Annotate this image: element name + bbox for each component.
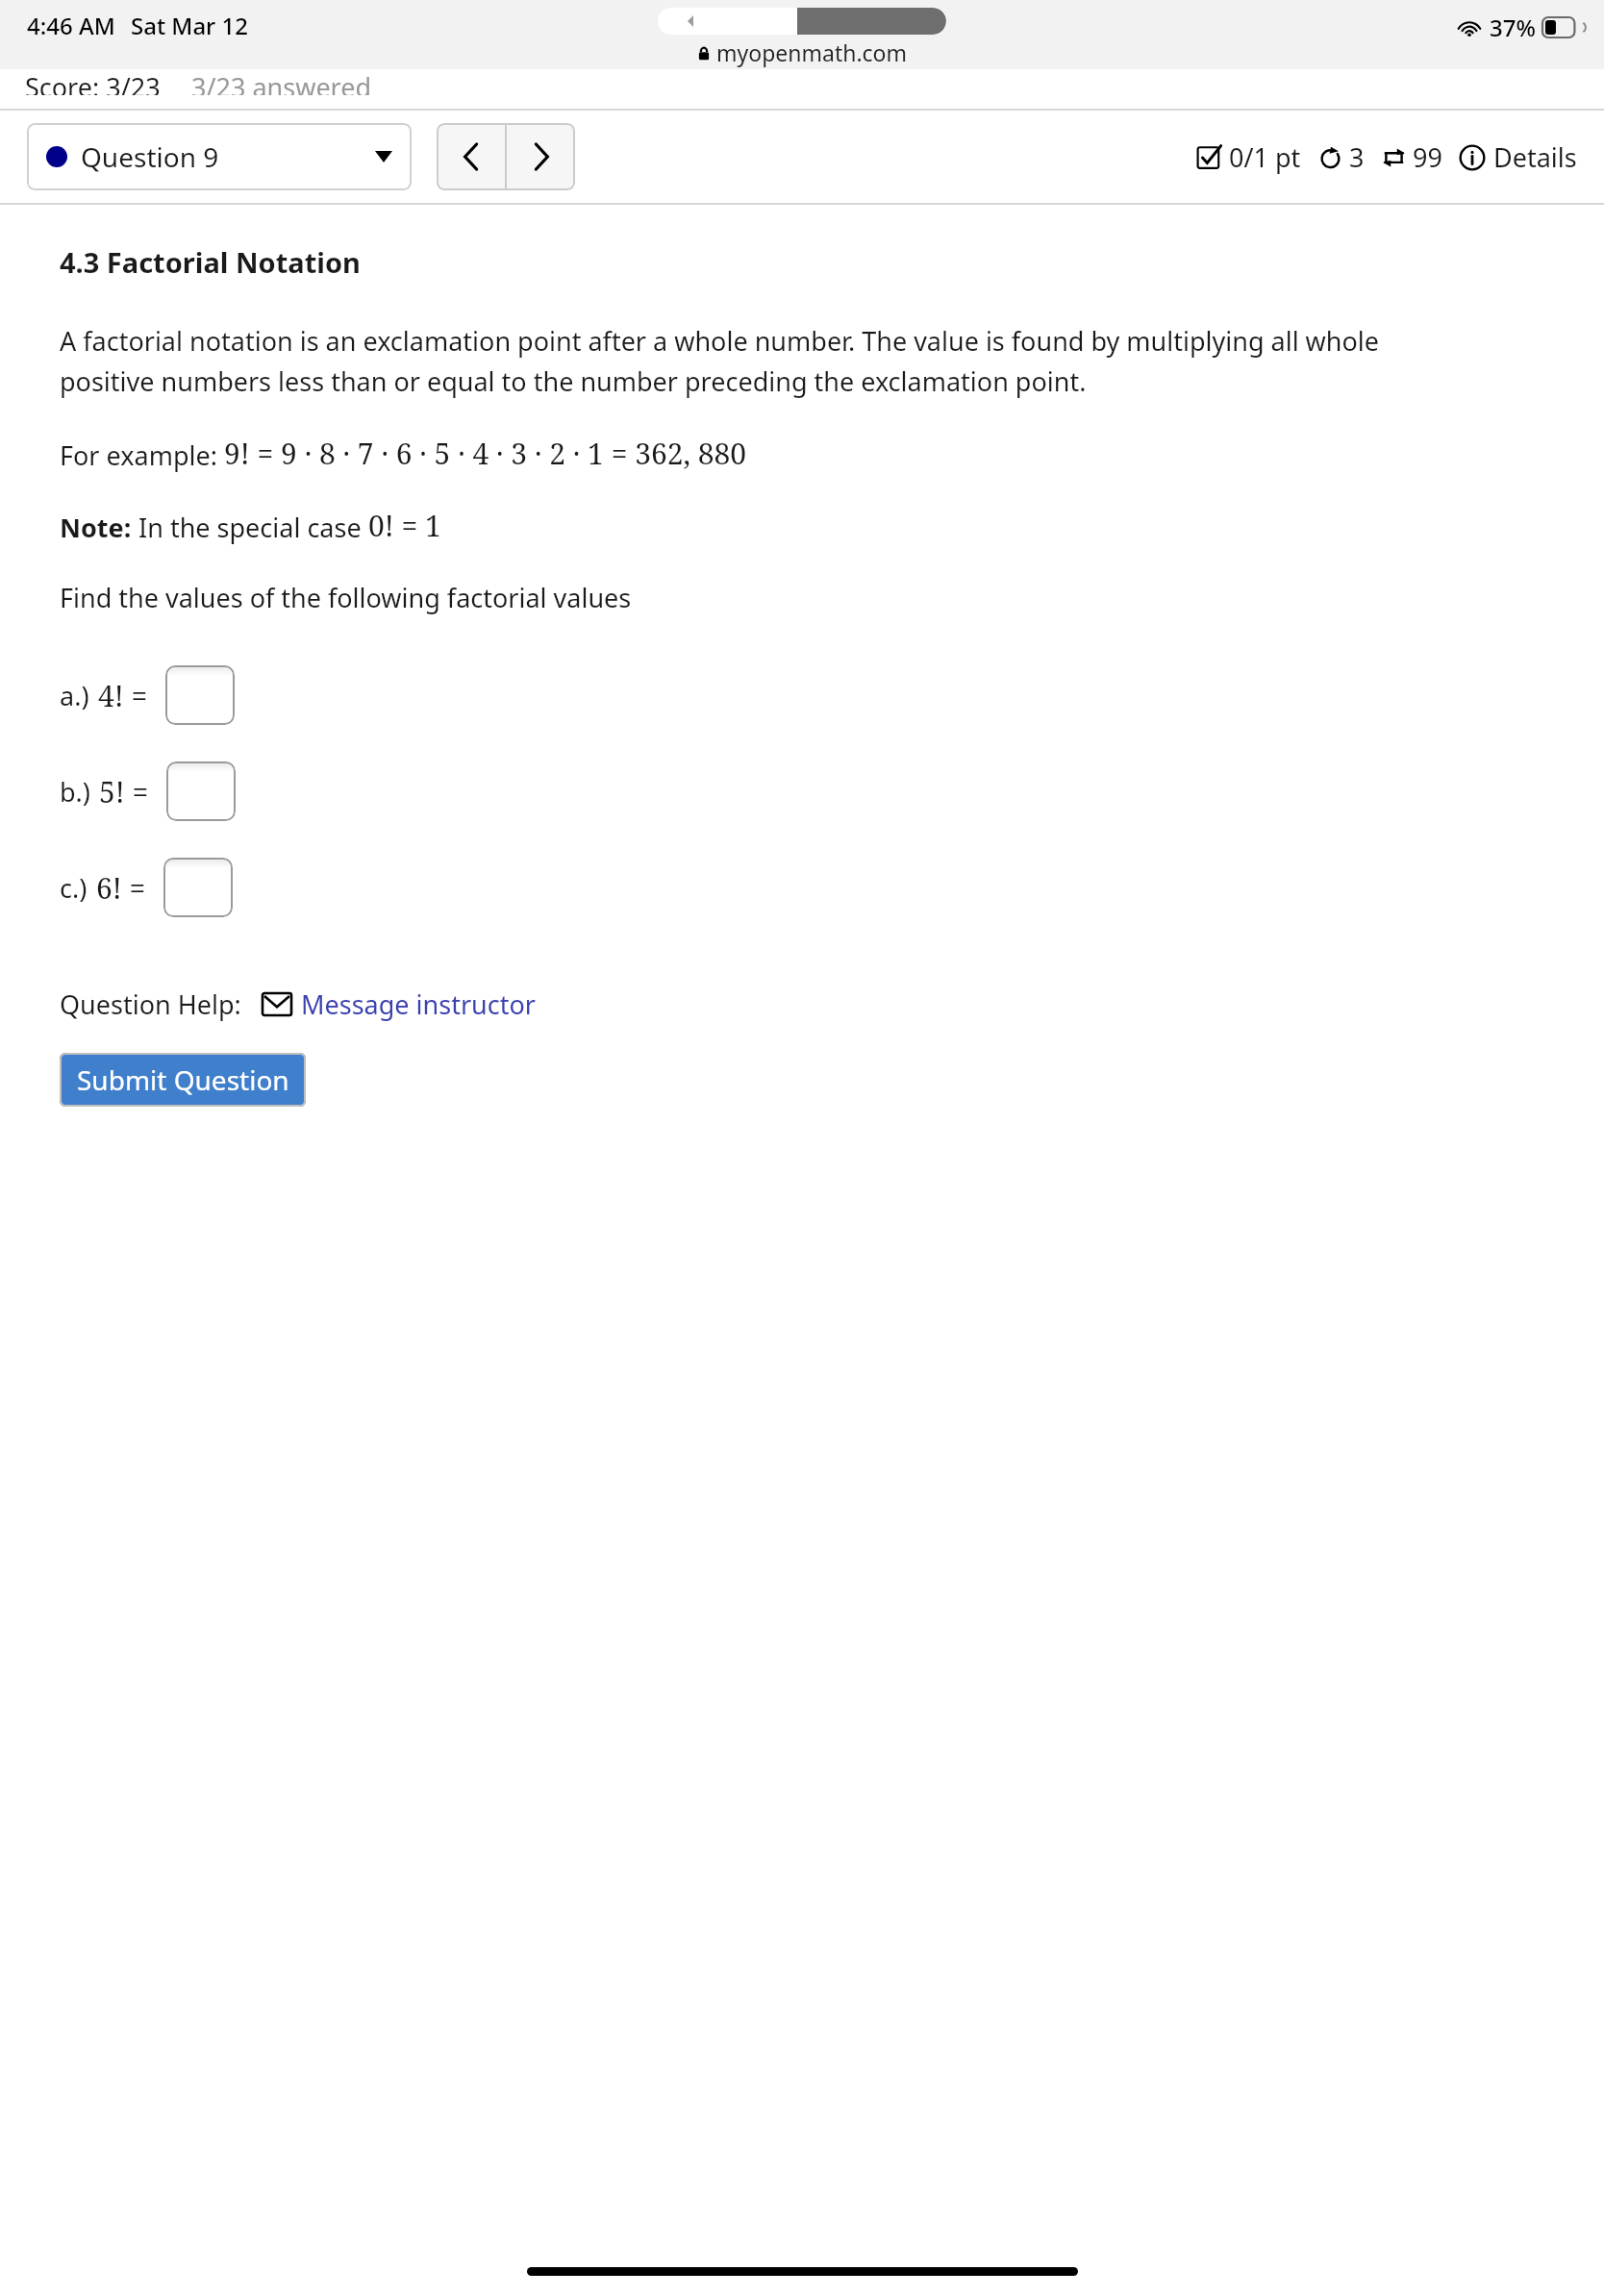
staticText: Sat Mar 12 <box>131 10 248 41</box>
staticText: 9! = 9 · 8 · 7 · 6 · 5 · 4 · 3 · 2 · 1 =… <box>224 434 747 473</box>
staticText: 4.3 Factorial Notation <box>60 243 361 281</box>
staticText: Find the values of the following factori… <box>60 580 632 615</box>
staticText: 99 <box>1413 139 1442 175</box>
staticText: Score: 3/23 <box>25 69 161 95</box>
staticText: For example: <box>60 437 224 473</box>
button[interactable]: Message instructor <box>263 986 536 1022</box>
staticText: In the special case <box>132 510 368 545</box>
staticText: b.) <box>60 774 90 810</box>
staticText: myopenmath.com <box>716 37 908 67</box>
staticText: A factorial notation is an exclamation p… <box>60 323 1396 399</box>
staticText: 3 <box>1349 139 1365 175</box>
button[interactable]: Window controls <box>658 8 946 35</box>
staticText: 37% <box>1490 12 1536 43</box>
staticText: 0! = 1 <box>368 506 441 545</box>
button[interactable]: Answer input <box>165 665 235 725</box>
staticText: 3/23 answered <box>191 69 372 95</box>
button[interactable]: Answer input <box>166 761 236 821</box>
staticText: 5! = <box>99 772 149 811</box>
button[interactable]: Question 9 <box>27 123 412 190</box>
button[interactable]: Next question <box>507 123 575 190</box>
button[interactable]: Previous question <box>437 123 505 190</box>
staticText: 6! = <box>96 868 146 908</box>
staticText: a.) <box>60 678 89 713</box>
button[interactable]: Details <box>1459 139 1577 175</box>
staticText: Details <box>1493 139 1577 175</box>
button[interactable]: Answer input <box>163 858 233 917</box>
staticText: Question 9 <box>81 138 219 175</box>
staticText: 0/1 pt <box>1229 139 1301 175</box>
button[interactable]: Submit Question <box>60 1053 306 1107</box>
staticText: 4:46 AM <box>27 10 115 41</box>
staticText: Submit Question <box>77 1061 289 1098</box>
staticText: c.) <box>60 870 88 906</box>
staticText: Note: <box>60 510 132 545</box>
staticText: Message instructor <box>301 986 536 1022</box>
staticText: Question Help: <box>60 986 241 1022</box>
staticText: 4! = <box>98 676 148 715</box>
